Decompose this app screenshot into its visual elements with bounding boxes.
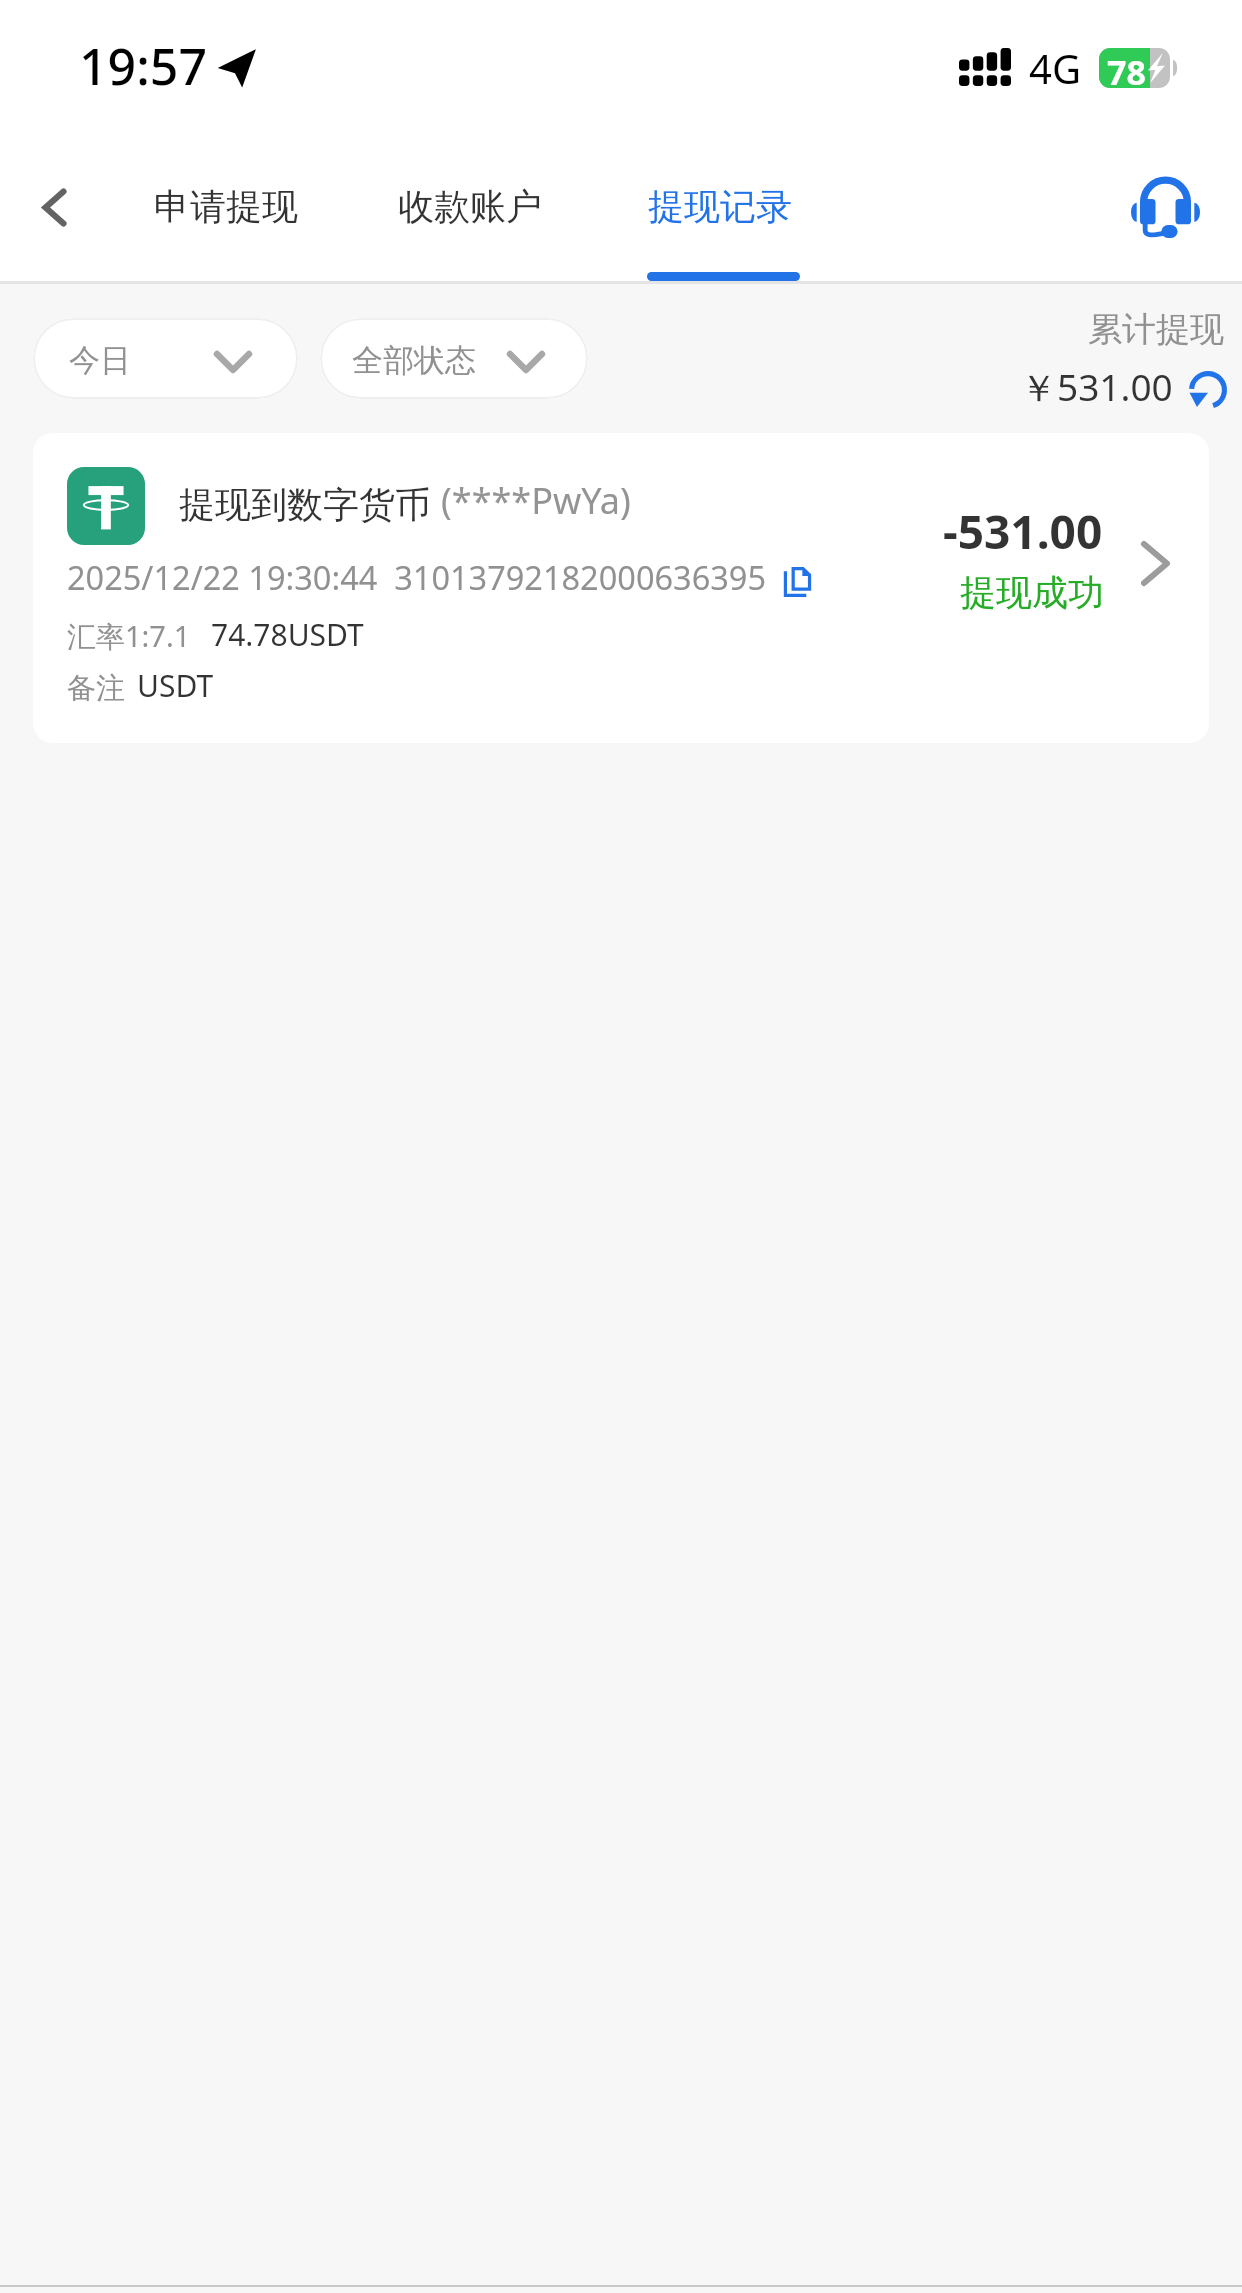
staticText: 累计提现	[1088, 308, 1224, 351]
staticText: 2025/12/22 19:30:44 31013792182000636395	[67, 555, 767, 599]
staticText: 提现记录	[648, 184, 792, 229]
staticText: USDT	[137, 665, 214, 706]
button[interactable]: Refresh	[1182, 364, 1234, 416]
staticText: 汇率1:7.1	[67, 616, 191, 656]
button[interactable]: 全部状态	[320, 318, 588, 399]
staticText: -531.00	[943, 500, 1103, 563]
staticText: 申请提现	[154, 184, 298, 229]
staticText: 19:57	[79, 32, 207, 100]
staticText: 4G	[1029, 41, 1081, 95]
button[interactable]: 收款账户	[376, 176, 562, 281]
staticText: 今日	[69, 341, 131, 380]
staticText: (****PwYa)	[441, 476, 631, 525]
staticText: 备注	[67, 670, 125, 707]
button[interactable]: Copy	[776, 559, 820, 603]
button[interactable]: 提现到数字货币	[33, 433, 1209, 743]
button[interactable]: Back	[10, 163, 99, 251]
button[interactable]: 今日	[33, 318, 298, 399]
button[interactable]: 申请提现	[132, 176, 318, 281]
button[interactable]: Customer service	[1117, 162, 1214, 252]
staticText: ￥531.00	[1020, 361, 1173, 412]
staticText: 收款账户	[398, 184, 542, 229]
staticText: 提现到数字货币	[179, 482, 431, 527]
staticText: 全部状态	[352, 341, 476, 380]
button[interactable]: 提现记录	[626, 176, 812, 281]
staticText: 提现成功	[960, 570, 1104, 615]
staticText: 78	[1107, 49, 1146, 89]
staticText: 74.78USDT	[211, 614, 364, 655]
